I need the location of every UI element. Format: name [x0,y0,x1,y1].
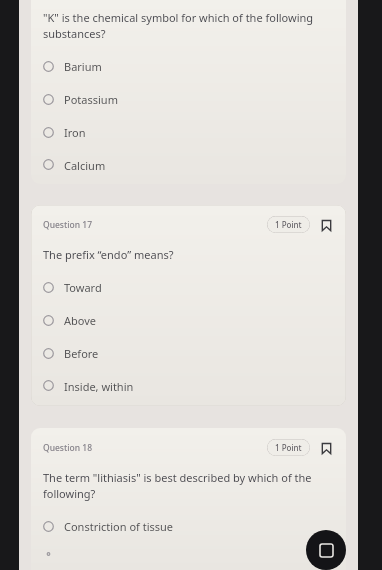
staticText: Above [64,313,97,328]
staticText: Constriction of tissue [64,519,174,534]
button[interactable]: Bookmark question [318,440,334,456]
staticText: Calcium [64,158,106,171]
button[interactable]: Before [43,343,334,364]
staticText: The term "lithiasis" is best described b… [43,470,334,502]
staticText: Barium [64,59,102,74]
staticText: 1 Point [275,219,302,230]
staticText: Toward [64,280,102,295]
button[interactable]: Question 18 [31,428,346,570]
staticText: 1 Point [275,442,302,453]
staticText: Question 17 [43,219,93,231]
button[interactable]: Potassium [43,89,334,110]
button[interactable]: Dissolving [43,549,334,559]
button[interactable]: Question 17 [31,205,346,406]
button[interactable]: Calcium [43,155,334,174]
staticText: Question 18 [43,442,93,454]
button[interactable]: 1 Point [267,439,310,456]
staticText: Iron [64,125,86,140]
staticText: "K" is the chemical symbol for which of … [43,10,334,42]
staticText: Before [64,346,99,361]
button[interactable]: Barium [43,56,334,77]
staticText: The prefix “endo” means? [43,247,174,262]
button[interactable]: "K" is the chemical symbol for which of … [31,0,346,184]
button[interactable]: Above [43,310,334,331]
button[interactable]: Inside, within [43,376,334,395]
button[interactable]: Submit [306,530,346,570]
staticText: Inside, within [64,379,134,392]
button[interactable]: Constriction of tissue [43,516,334,537]
button[interactable]: Toward [43,277,334,298]
staticText: Potassium [64,92,118,107]
button[interactable]: 1 Point [267,216,310,233]
button[interactable]: Iron [43,122,334,143]
button[interactable]: Bookmark question [318,217,334,233]
